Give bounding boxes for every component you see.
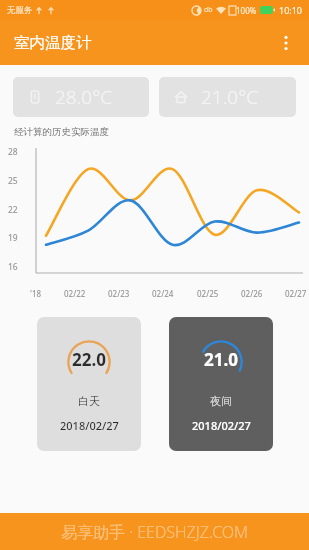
staticText: 100% [236,5,257,16]
staticText: 02/25 [197,288,219,299]
staticText: 22.0 [72,348,106,371]
staticText: 02/26 [241,288,263,299]
staticText: 21.0°C [201,84,259,110]
staticText: 02/23 [108,288,130,299]
staticText: 16 [8,261,18,273]
staticText: 21.0 [204,348,238,371]
staticText: 10:10 [279,4,303,16]
staticText: 02/22 [64,288,86,299]
staticText: 02/27 [285,288,307,299]
staticText: 28.0°C [55,84,113,110]
button[interactable]: 21.0°C [159,77,296,117]
staticText: db [204,5,213,15]
staticText: '18 [30,288,42,299]
staticText: 室内温度计 [14,33,92,53]
staticText: 夜间 [210,394,232,408]
staticText: 2018/02/27 [60,418,119,433]
staticText: 22 [8,204,18,216]
staticText: 白天 [78,394,100,408]
staticText: 19 [8,232,18,244]
staticText: 28 [8,146,18,158]
staticText: 2018/02/27 [192,418,251,433]
button[interactable]: 28.0°C [13,77,149,117]
staticText: 25 [8,175,18,187]
button[interactable]: More options [269,26,303,60]
button[interactable]: 22.0 [37,317,141,451]
staticText: 经计算的历史实际温度 [14,126,109,138]
staticText: 02/24 [152,288,174,299]
staticText: 易享助手 · EEDSHZJZ.COM [61,521,249,543]
staticText: 无服务 [7,5,33,16]
button[interactable]: 21.0 [169,317,273,451]
